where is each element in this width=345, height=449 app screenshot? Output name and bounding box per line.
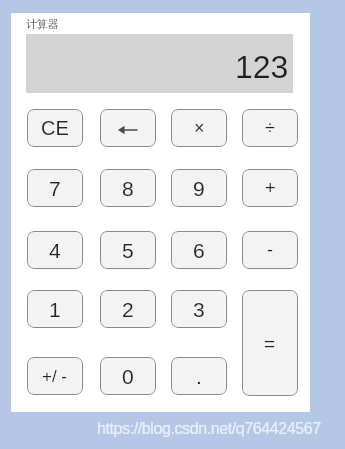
button[interactable]: ÷ xyxy=(242,109,298,147)
staticText: CE xyxy=(41,117,69,139)
staticText: - xyxy=(267,240,273,260)
button[interactable]: 6 xyxy=(171,231,227,269)
button[interactable]: . xyxy=(171,357,227,395)
staticText: 0 xyxy=(122,365,134,388)
staticText: 1 xyxy=(49,298,61,321)
button[interactable]: 2 xyxy=(100,290,156,328)
button[interactable]: 5 xyxy=(100,231,156,269)
staticText: ÷ xyxy=(265,118,275,138)
button[interactable]: + xyxy=(242,169,298,207)
button[interactable] xyxy=(100,109,156,147)
staticText: 6 xyxy=(193,239,205,262)
staticText: 4 xyxy=(49,239,61,262)
button[interactable]: = xyxy=(242,290,298,396)
staticText: +/ - xyxy=(42,367,68,386)
staticText: 2 xyxy=(122,298,134,321)
staticText: + xyxy=(265,178,276,198)
button[interactable]: 9 xyxy=(171,169,227,207)
staticText: × xyxy=(194,118,205,138)
button[interactable]: +/ - xyxy=(27,357,83,395)
staticText: https://blog.csdn.net/q764424567 xyxy=(97,420,321,438)
button[interactable]: 8 xyxy=(100,169,156,207)
button[interactable]: 0 xyxy=(100,357,156,395)
staticText: 3 xyxy=(193,298,205,321)
button[interactable]: 3 xyxy=(171,290,227,328)
staticText: 计算器 xyxy=(26,17,59,31)
staticText: . xyxy=(196,365,202,388)
button[interactable]: × xyxy=(171,109,227,147)
staticText: = xyxy=(264,333,276,354)
staticText: 8 xyxy=(122,177,134,200)
button[interactable]: - xyxy=(242,231,298,269)
button[interactable]: 4 xyxy=(27,231,83,269)
staticText: 5 xyxy=(122,239,134,262)
staticText: 123 xyxy=(235,49,289,85)
button[interactable]: 1 xyxy=(27,290,83,328)
staticText: 9 xyxy=(193,177,205,200)
button[interactable]: CE xyxy=(27,109,83,147)
button[interactable]: 7 xyxy=(27,169,83,207)
staticText: 7 xyxy=(49,177,61,200)
